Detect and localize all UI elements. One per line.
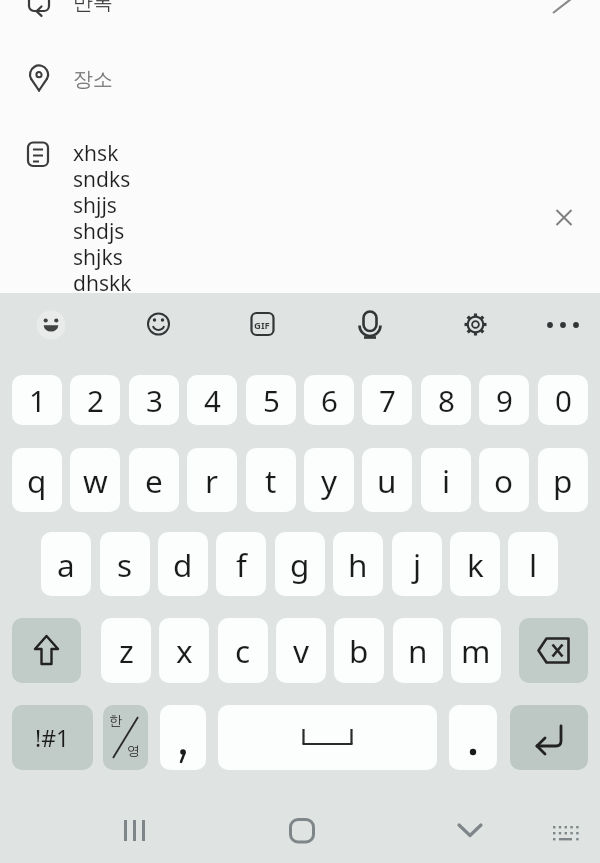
- staticText: p: [553, 459, 573, 502]
- button[interactable]: [12, 618, 81, 683]
- button[interactable]: x: [159, 618, 209, 683]
- staticText: 7: [379, 380, 396, 420]
- button[interactable]: b: [334, 618, 384, 683]
- button[interactable]: o: [479, 448, 529, 512]
- staticText: l: [529, 543, 538, 586]
- button[interactable]: a: [41, 532, 91, 596]
- button[interactable]: k: [450, 532, 500, 596]
- staticText: 영: [127, 742, 140, 758]
- button[interactable]: i: [421, 448, 471, 512]
- button[interactable]: [519, 618, 588, 683]
- staticText: f: [236, 543, 247, 586]
- button[interactable]: p: [538, 448, 588, 512]
- staticText: 3: [146, 380, 163, 420]
- button[interactable]: 6: [304, 375, 354, 425]
- staticText: 1: [29, 380, 46, 420]
- button[interactable]: [540, 805, 590, 855]
- staticText: 2: [87, 380, 104, 420]
- button[interactable]: 한: [103, 705, 148, 770]
- staticText: k: [467, 543, 484, 586]
- button[interactable]: [277, 805, 327, 855]
- staticText: v: [293, 629, 310, 672]
- button[interactable]: w: [70, 448, 120, 512]
- button[interactable]: v: [276, 618, 326, 683]
- button[interactable]: 8: [421, 375, 471, 425]
- staticText: y: [321, 459, 338, 502]
- staticText: s: [117, 543, 133, 586]
- button[interactable]: 2: [70, 375, 120, 425]
- staticText: 5: [263, 380, 280, 420]
- button[interactable]: 3: [129, 375, 179, 425]
- button[interactable]: n: [393, 618, 443, 683]
- staticText: a: [57, 543, 75, 586]
- staticText: 9: [496, 380, 513, 420]
- button[interactable]: 5: [246, 375, 296, 425]
- button[interactable]: z: [101, 618, 151, 683]
- button[interactable]: e: [129, 448, 179, 512]
- staticText: !#1: [35, 722, 70, 753]
- staticText: u: [377, 459, 397, 502]
- button[interactable]: [110, 805, 160, 855]
- button[interactable]: l: [508, 532, 558, 596]
- button[interactable]: 0: [538, 375, 588, 425]
- button[interactable]: 4: [187, 375, 237, 425]
- staticText: r: [205, 459, 219, 502]
- staticText: 0: [555, 380, 572, 420]
- button[interactable]: d: [158, 532, 208, 596]
- staticText: n: [408, 629, 428, 672]
- button[interactable]: [510, 705, 588, 770]
- staticText: 6: [321, 380, 338, 420]
- staticText: c: [235, 629, 251, 672]
- staticText: GIF: [254, 319, 270, 332]
- staticText: b: [349, 629, 369, 672]
- button[interactable]: [449, 705, 497, 770]
- staticText: j: [413, 543, 422, 586]
- staticText: e: [145, 459, 163, 502]
- staticText: xhsk sndks shjjs shdjs shjks dhskk: [73, 139, 132, 293]
- button[interactable]: y: [304, 448, 354, 512]
- staticText: 장소: [73, 67, 113, 92]
- button[interactable]: q: [12, 448, 62, 512]
- button[interactable]: j: [392, 532, 442, 596]
- staticText: w: [83, 459, 108, 502]
- staticText: 8: [438, 380, 455, 420]
- button[interactable]: GIF: [0, 293, 600, 375]
- button[interactable]: 7: [362, 375, 412, 425]
- button[interactable]: s: [100, 532, 150, 596]
- staticText: i: [442, 459, 451, 502]
- staticText: q: [27, 459, 47, 502]
- button[interactable]: g: [275, 532, 325, 596]
- staticText: d: [173, 543, 193, 586]
- button[interactable]: !#1: [12, 705, 93, 770]
- staticText: 한: [109, 712, 122, 728]
- button[interactable]: m: [451, 618, 501, 683]
- staticText: x: [176, 629, 193, 672]
- staticText: 4: [204, 380, 221, 420]
- staticText: z: [119, 629, 134, 672]
- staticText: 반복: [73, 0, 113, 15]
- staticText: t: [265, 459, 277, 502]
- button[interactable]: h: [333, 532, 383, 596]
- button[interactable]: [160, 705, 206, 770]
- button[interactable]: u: [362, 448, 412, 512]
- staticText: g: [290, 543, 310, 586]
- button[interactable]: f: [216, 532, 266, 596]
- staticText: h: [348, 543, 368, 586]
- staticText: o: [494, 459, 514, 502]
- button[interactable]: c: [218, 618, 268, 683]
- button[interactable]: r: [187, 448, 237, 512]
- button[interactable]: [445, 805, 495, 855]
- button[interactable]: 9: [479, 375, 529, 425]
- staticText: m: [461, 629, 491, 672]
- button[interactable]: 1: [12, 375, 62, 425]
- button[interactable]: t: [246, 448, 296, 512]
- button[interactable]: [218, 705, 437, 770]
